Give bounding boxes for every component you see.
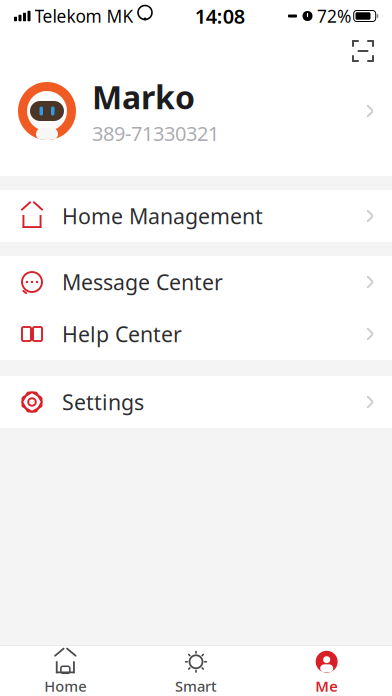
button[interactable]: Me <box>261 644 392 696</box>
button[interactable]: Scan QR code <box>342 32 384 70</box>
staticText: Marko <box>92 75 195 118</box>
staticText: Me <box>315 676 338 696</box>
button[interactable]: Marko <box>0 72 392 150</box>
button[interactable]: Home Management <box>0 190 392 242</box>
button[interactable]: Smart <box>131 644 261 696</box>
staticText: Message Center <box>62 268 223 296</box>
staticText: Home Management <box>62 202 263 230</box>
staticText: 72% <box>317 4 351 27</box>
staticText: Home <box>44 676 86 696</box>
staticText: Smart <box>175 676 217 696</box>
button[interactable]: Home <box>0 644 131 696</box>
staticText: Telekom MK <box>34 4 133 27</box>
staticText: 389-71330321 <box>92 120 219 147</box>
button[interactable]: Message Center <box>0 256 392 308</box>
staticText: 14:08 <box>195 3 245 29</box>
staticText: Help Center <box>62 320 182 348</box>
staticText: Settings <box>62 388 144 416</box>
button[interactable]: Help Center <box>0 308 392 360</box>
button[interactable]: Settings <box>0 376 392 428</box>
